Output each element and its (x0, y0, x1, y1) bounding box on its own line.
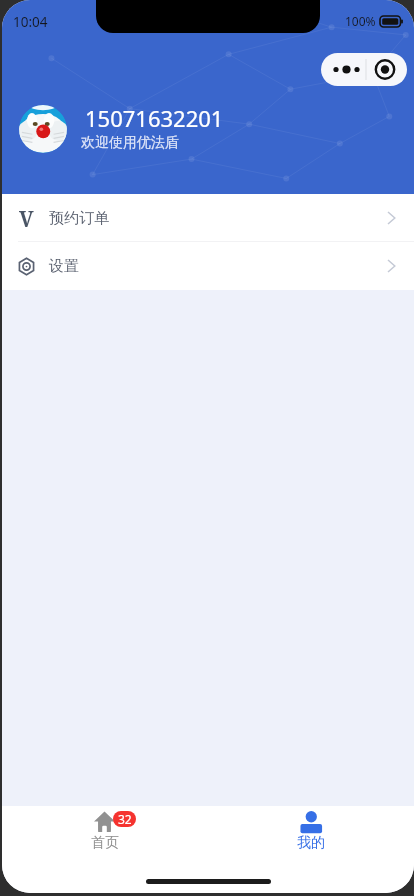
staticText: 32 (118, 811, 132, 827)
button[interactable]: Mini program menu (321, 53, 407, 86)
staticText: 我的 (297, 834, 325, 852)
staticText: 10:04 (13, 13, 48, 31)
staticText: 设置 (49, 257, 79, 276)
staticText: 15071632201 (85, 103, 224, 133)
staticText: 100% (345, 13, 376, 29)
button[interactable]: 设置 (2, 242, 414, 290)
staticText: 首页 (91, 834, 119, 852)
button[interactable]: V (2, 194, 414, 242)
staticText: 预约订单 (49, 209, 109, 228)
button[interactable]: 我的 (208, 806, 414, 856)
button[interactable]: 32 (2, 806, 208, 856)
staticText: V (19, 205, 34, 229)
staticText: 欢迎使用优法盾 (81, 134, 179, 152)
